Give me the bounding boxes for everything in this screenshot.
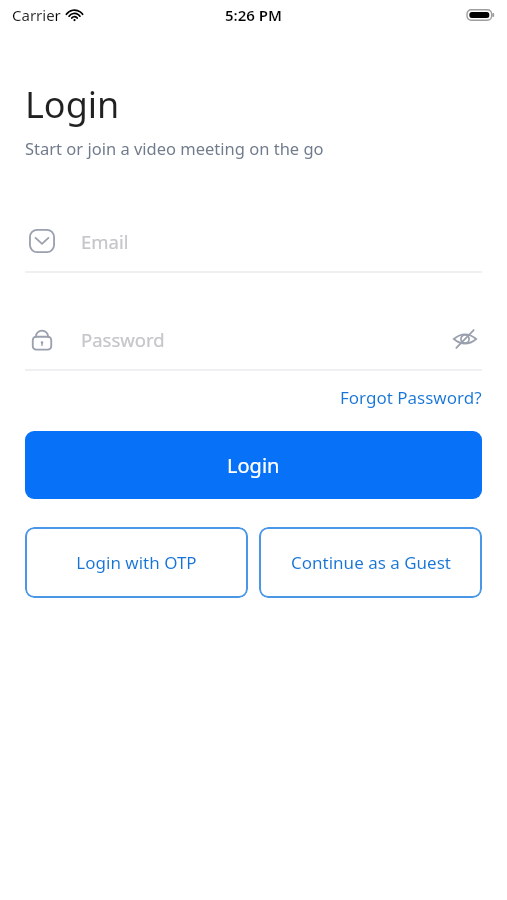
button[interactable]: Continue as a Guest [259,527,482,598]
staticText: Start or join a video meeting on the go [25,137,324,159]
other: Email [28,227,56,255]
staticText: Continue as a Guest [291,551,451,574]
staticText: Login with OTP [76,551,197,574]
other: Password [28,325,56,353]
button[interactable]: Login with OTP [25,527,248,598]
staticText: Login [227,452,280,479]
button[interactable]: Show password [448,322,482,356]
button[interactable]: Email [25,217,482,265]
staticText: Login [25,80,120,129]
staticText: 5:26 PM [225,5,282,25]
button[interactable]: Password [25,315,482,363]
staticText: Forgot Password? [340,386,482,409]
staticText: Email [81,229,482,254]
staticText: Carrier [12,5,61,25]
button[interactable]: Login [25,431,482,499]
staticText: Password [81,327,448,352]
button[interactable]: Forgot Password? [340,384,507,411]
